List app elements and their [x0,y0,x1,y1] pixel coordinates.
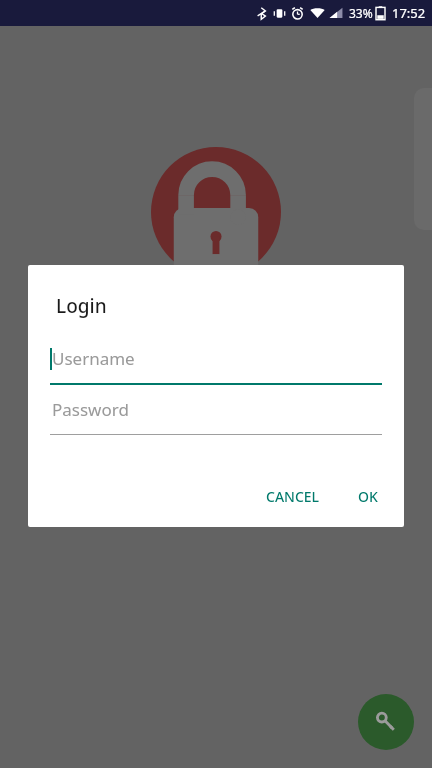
button[interactable]: Show password [358,694,414,750]
staticText: 33% [349,5,373,21]
staticText: 17:52 [392,4,426,22]
button[interactable]: CANCEL [256,478,330,515]
button[interactable]: Username [50,347,382,385]
staticText: Username [52,347,135,370]
button[interactable]: OK [348,478,388,515]
staticText: OK [358,487,378,506]
staticText: CANCEL [266,487,320,506]
button[interactable]: Password [50,397,382,435]
staticText: Login [56,293,107,319]
staticText: Password [52,398,129,421]
